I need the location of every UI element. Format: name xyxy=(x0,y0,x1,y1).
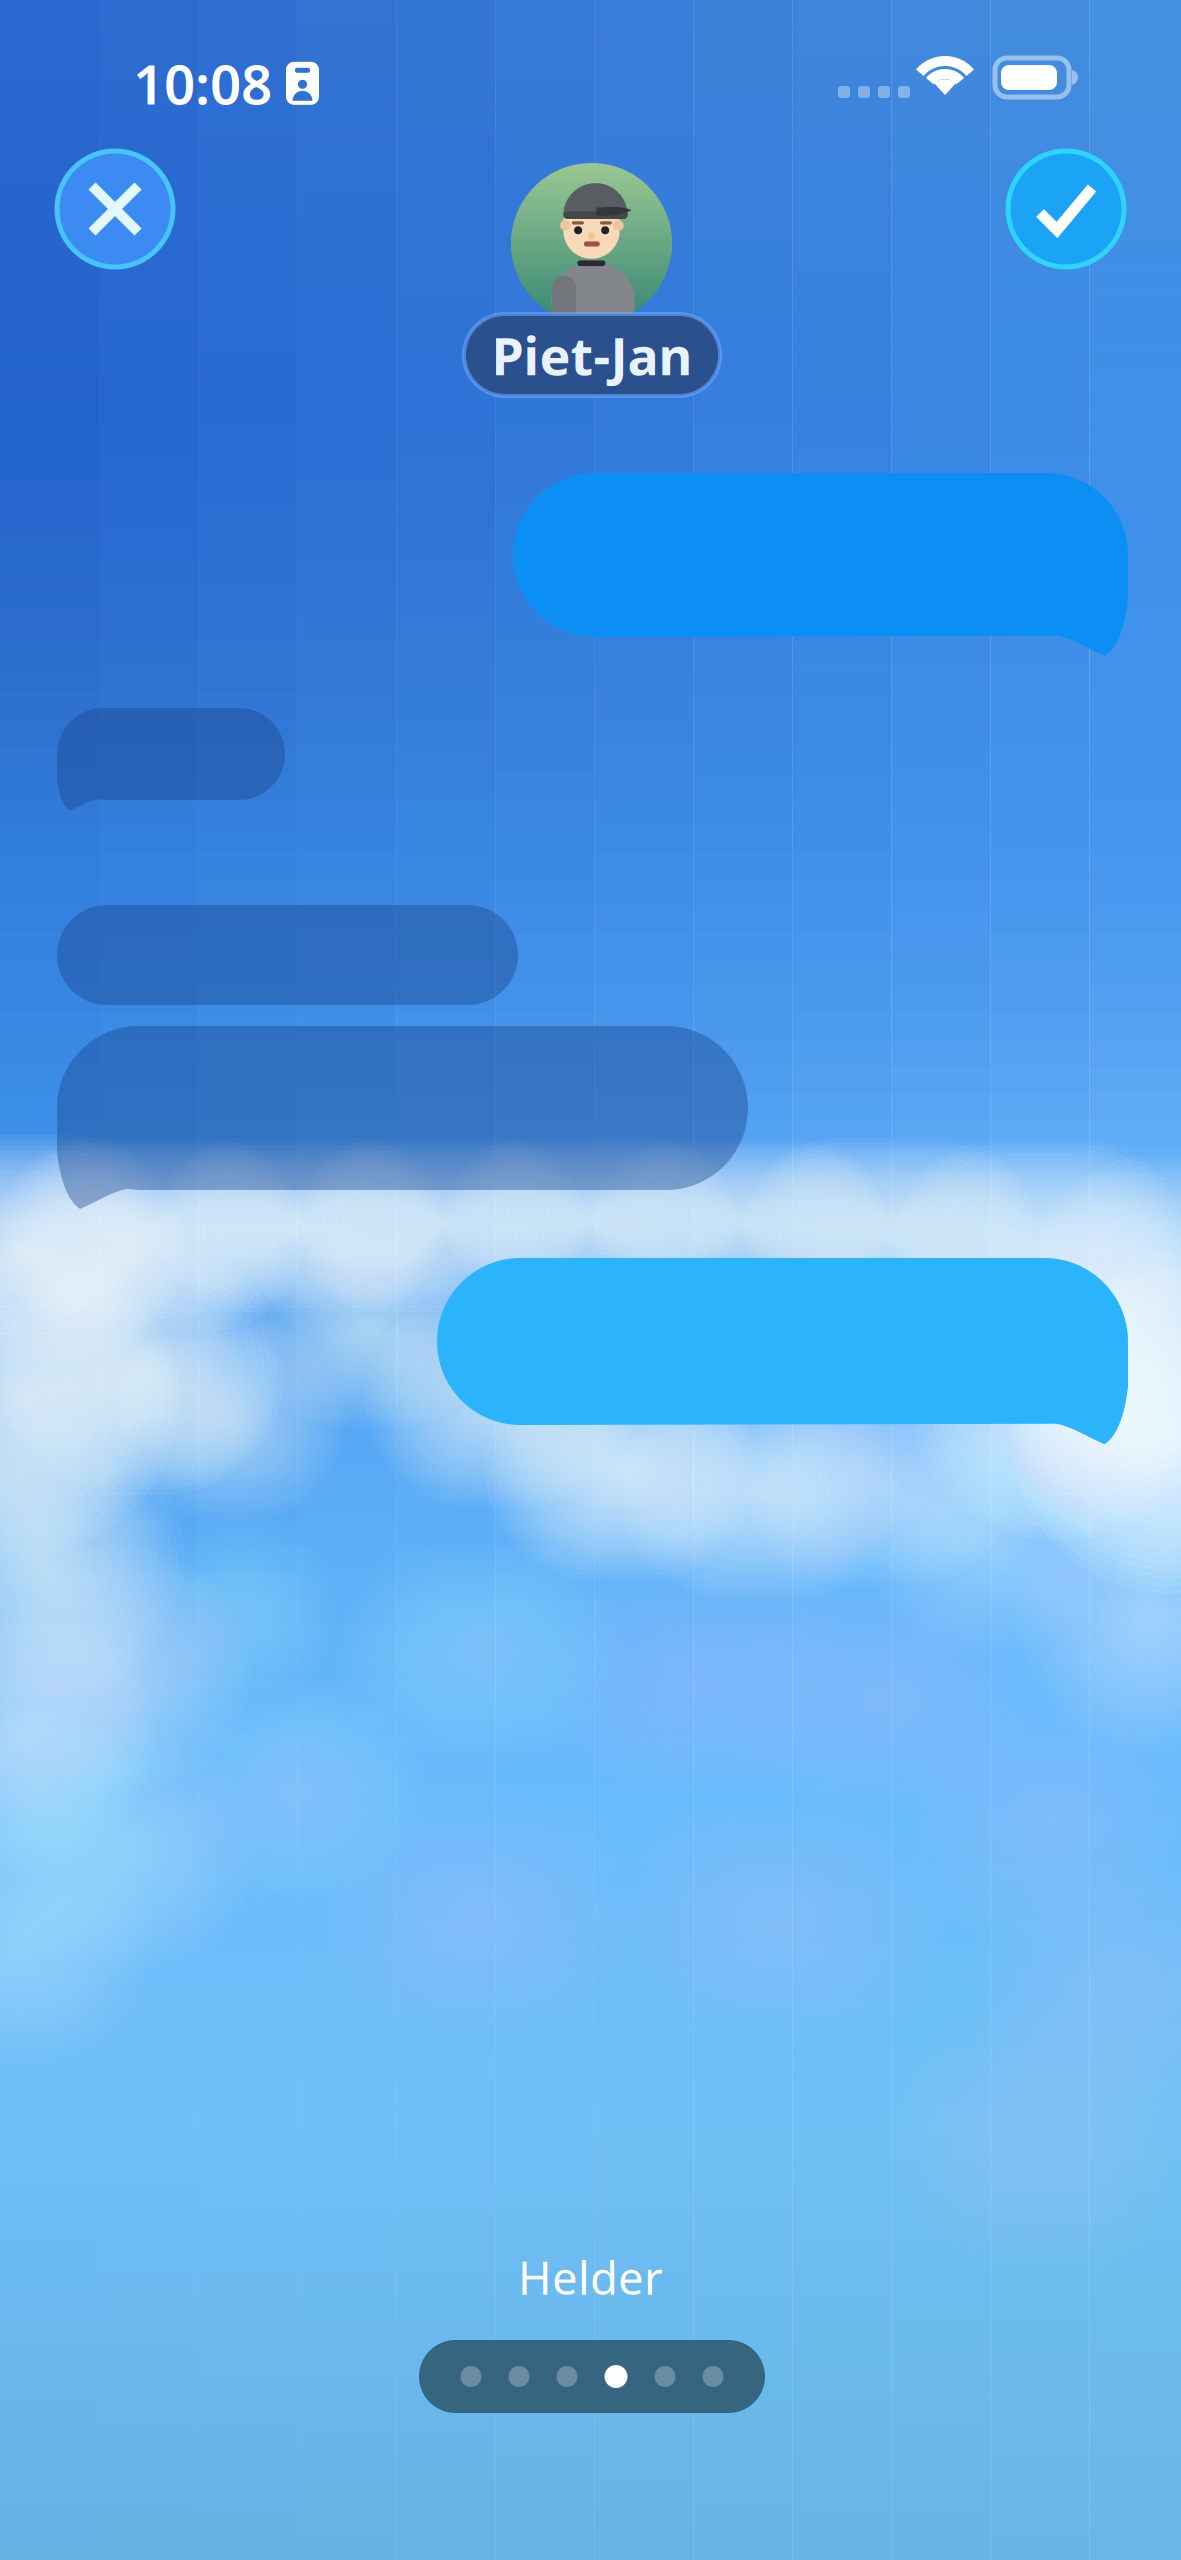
button[interactable]: Done xyxy=(1007,150,1125,268)
staticText: Piet-Jan xyxy=(491,320,692,390)
staticText: 10:08 xyxy=(133,47,272,120)
staticText: Helder xyxy=(518,2247,663,2307)
button[interactable]: Page 4 of 6 xyxy=(419,2340,765,2413)
button[interactable]: Cancel xyxy=(56,150,174,268)
